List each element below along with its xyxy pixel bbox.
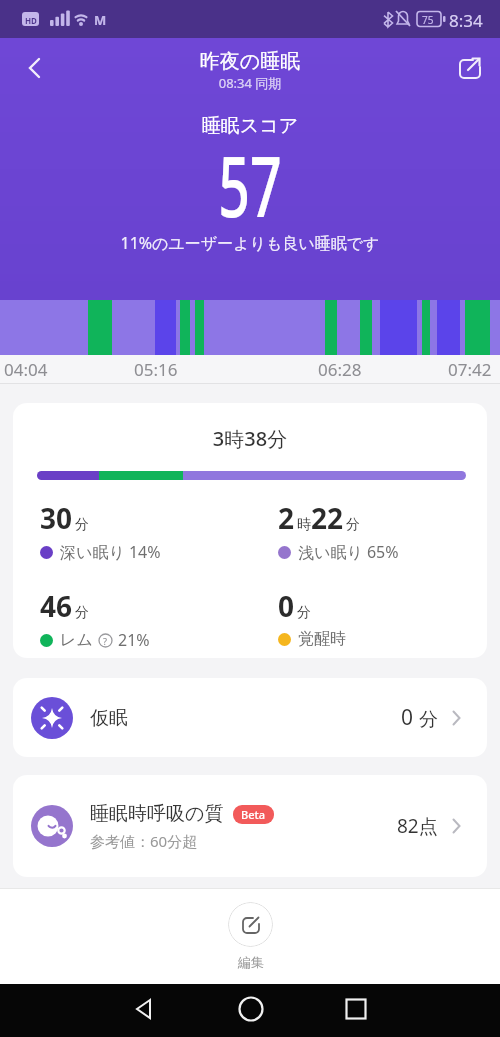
staticText: 分: [75, 604, 89, 622]
staticText: 覚醒時: [298, 629, 346, 649]
staticText: 57: [85, 127, 415, 241]
staticText: M: [94, 11, 107, 29]
staticText: 睡眠スコア: [0, 114, 500, 138]
staticText: 分: [346, 516, 360, 534]
staticText: 21%: [118, 629, 150, 651]
staticText: 06:28: [318, 358, 362, 381]
staticText: 深い眠り 14%: [60, 541, 161, 563]
staticText: 編集: [238, 954, 264, 970]
button[interactable]: [12, 44, 60, 92]
staticText: 8:34: [449, 9, 483, 32]
button[interactable]: [446, 44, 494, 92]
staticText: 昨夜の睡眠: [0, 49, 500, 74]
staticText: Beta: [241, 807, 266, 822]
staticText: 0: [278, 587, 295, 625]
staticText: 分: [297, 604, 311, 622]
staticText: 参考値：60分超: [90, 831, 198, 851]
staticText: 08:34 同期: [0, 74, 500, 92]
staticText: ?: [103, 635, 108, 647]
button[interactable]: 仮眠: [13, 678, 487, 757]
staticText: 分: [75, 516, 89, 534]
staticText: 分: [419, 708, 438, 732]
button[interactable]: 睡眠時呼吸の質: [13, 775, 487, 877]
staticText: 3時38分: [13, 425, 487, 452]
button[interactable]: [228, 986, 273, 1031]
button[interactable]: [333, 986, 378, 1031]
staticText: 46: [40, 587, 73, 625]
staticText: 0: [401, 703, 414, 732]
staticText: 浅い眠り 65%: [298, 541, 399, 563]
button[interactable]: [121, 986, 166, 1031]
staticText: 07:42: [448, 358, 492, 381]
button[interactable]: [228, 902, 273, 947]
staticText: 2: [278, 499, 295, 537]
staticText: レム: [60, 630, 93, 650]
staticText: HD: [25, 15, 37, 26]
staticText: 仮眠: [90, 706, 128, 730]
staticText: 睡眠時呼吸の質: [90, 802, 224, 826]
staticText: 75: [422, 13, 434, 27]
staticText: 04:04: [4, 358, 48, 381]
staticText: 22: [311, 499, 344, 537]
staticText: 82点: [397, 813, 438, 839]
staticText: 11%のユーザーよりも良い睡眠です: [0, 232, 500, 254]
staticText: 30: [40, 499, 73, 537]
staticText: 05:16: [134, 358, 178, 381]
staticText: 時: [297, 516, 311, 534]
